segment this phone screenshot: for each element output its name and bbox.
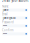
staticText: Confirm: [2, 28, 13, 32]
button[interactable]: Email: [2, 12, 28, 19]
staticText: Name: [2, 5, 9, 8]
button[interactable]: Confirm: [2, 28, 28, 35]
staticText: ••••: [3, 32, 7, 36]
staticText: Create your account: [1, 0, 28, 2]
button[interactable]: Name: [2, 5, 28, 11]
staticText: ••••: [3, 24, 7, 28]
staticText: Email: [2, 12, 8, 16]
staticText: Password: [2, 20, 14, 24]
button[interactable]: Password: [2, 20, 28, 27]
staticText: jane@x.co: [3, 16, 16, 20]
staticText: Jane: [3, 8, 9, 12]
